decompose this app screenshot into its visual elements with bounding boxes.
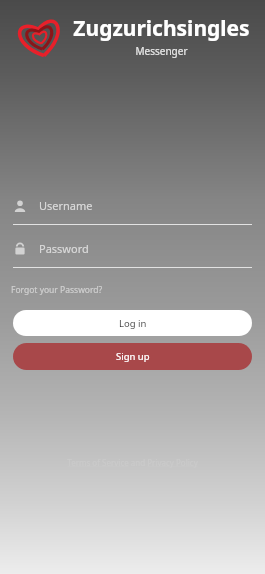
staticText: Username — [39, 198, 93, 213]
button[interactable]: Password — [13, 241, 252, 268]
button[interactable]: Sign up — [13, 343, 252, 370]
button[interactable]: Log in — [13, 310, 252, 336]
staticText: Password — [39, 241, 89, 256]
staticText: Log in — [119, 317, 147, 330]
staticText: Zugzurichsingles — [73, 14, 250, 43]
staticText: Forgot your Password? — [11, 284, 103, 296]
button[interactable]: Username — [13, 198, 252, 225]
staticText: Messenger — [135, 44, 188, 58]
staticText: Sign up — [116, 350, 150, 363]
button[interactable]: Forgot your Password? — [8, 282, 106, 298]
